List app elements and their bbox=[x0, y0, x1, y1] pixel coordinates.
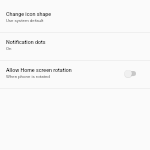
button[interactable]: Change icon shape bbox=[0, 5, 150, 32]
staticText: Use system default bbox=[6, 18, 44, 23]
staticText: On bbox=[6, 46, 12, 51]
staticText: Notification dots bbox=[6, 39, 46, 45]
button[interactable]: Allow Home screen rotation bbox=[0, 61, 150, 88]
staticText: When phone is rotated bbox=[6, 74, 50, 79]
button[interactable]: Notification dots bbox=[0, 33, 150, 60]
staticText: Allow Home screen rotation bbox=[6, 67, 72, 73]
button[interactable]: Allow Home screen rotation toggle bbox=[121, 66, 139, 80]
staticText: Change icon shape bbox=[6, 11, 52, 17]
